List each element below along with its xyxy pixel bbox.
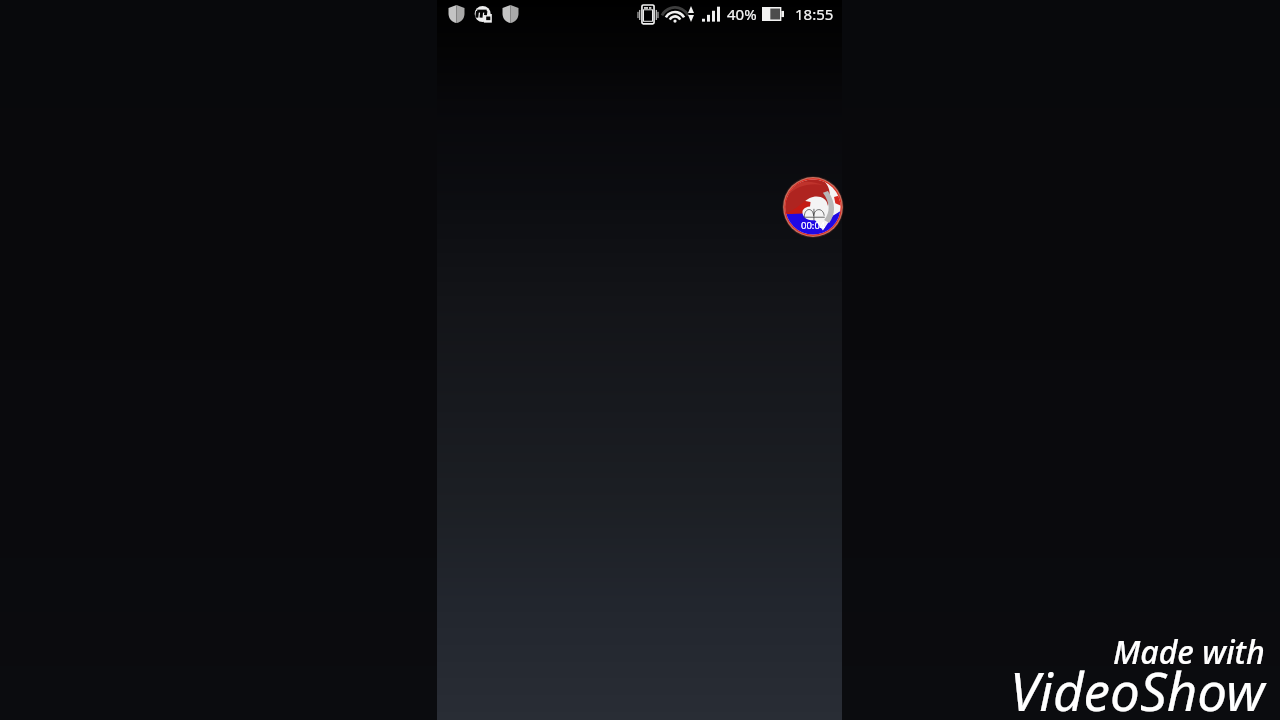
button[interactable]: Screen recorder timer <box>782 176 844 238</box>
staticText: 00:04 <box>801 219 826 232</box>
staticText: 18:55 <box>795 4 834 24</box>
staticText: Made with <box>1113 630 1265 674</box>
staticText: VideoShow <box>1010 654 1265 720</box>
staticText: 40% <box>727 4 757 24</box>
